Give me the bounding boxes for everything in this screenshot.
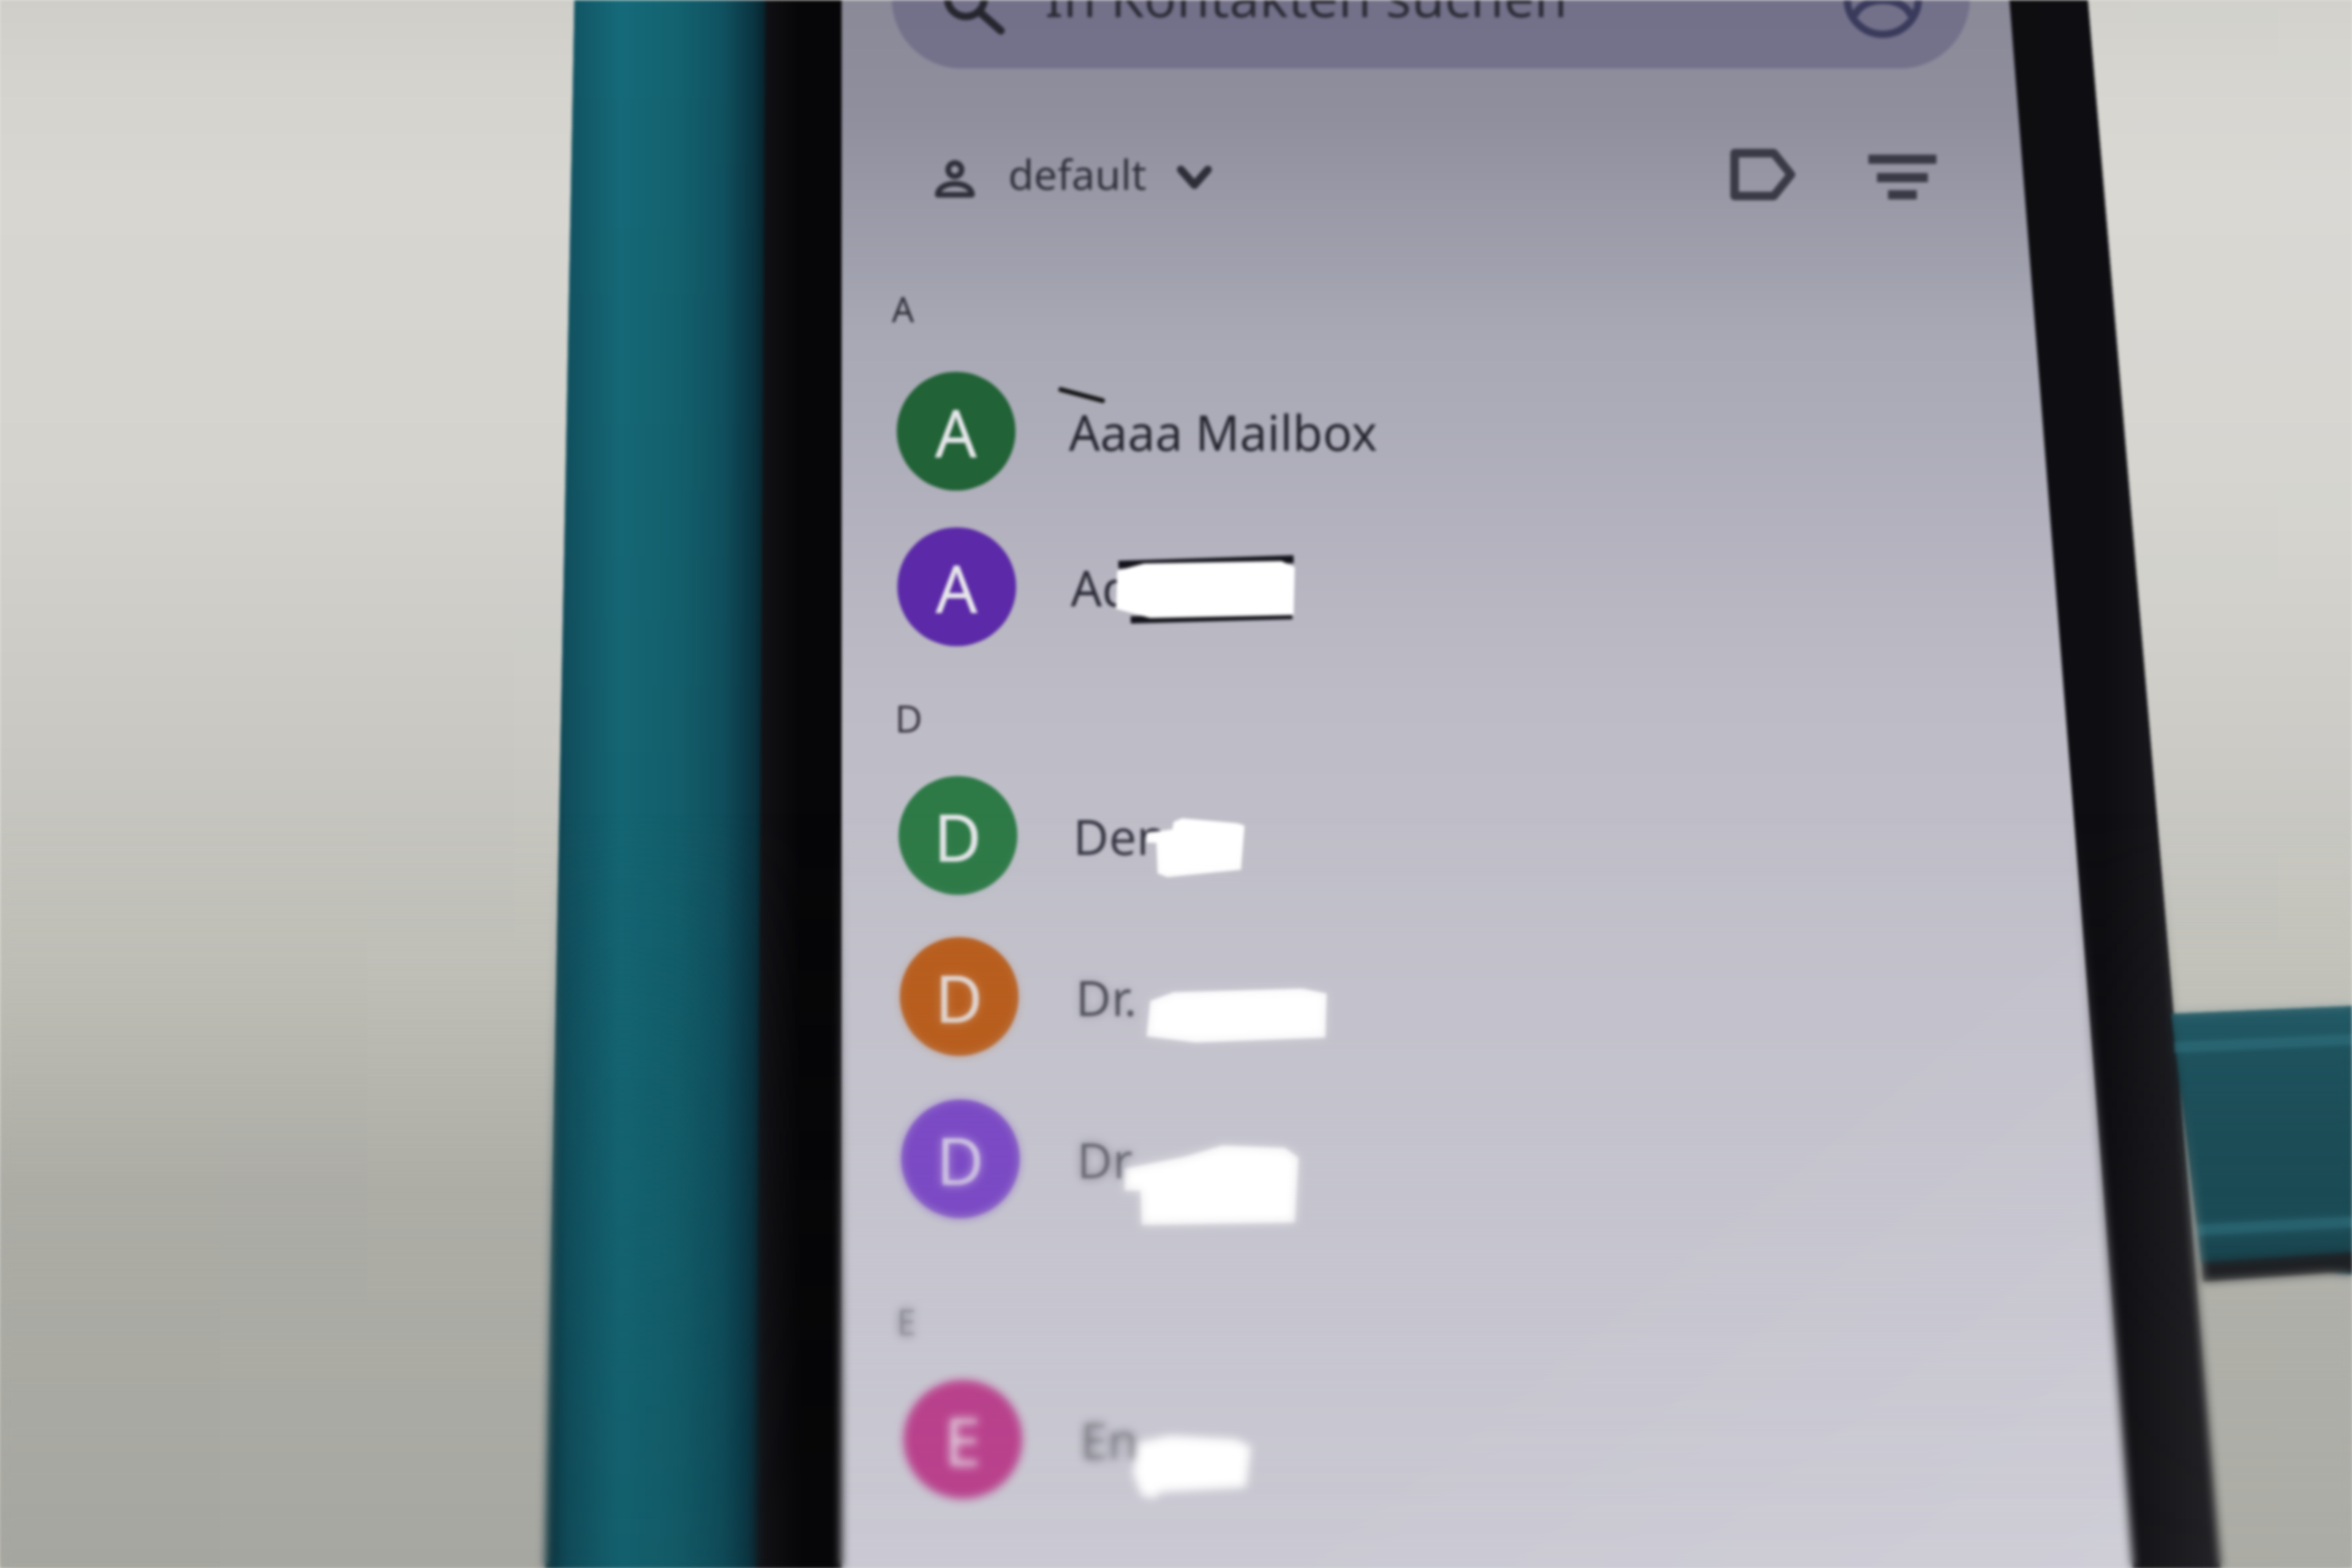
button[interactable]: Konto — [1841, 0, 1920, 67]
button[interactable] — [919, 130, 1237, 227]
button[interactable] — [842, 354, 2005, 510]
button[interactable] — [842, 1359, 2067, 1520]
button[interactable]: In Kontakten suchen — [892, 0, 1847, 69]
button[interactable] — [842, 916, 2042, 1078]
button[interactable]: Label — [1709, 123, 1819, 233]
button[interactable]: Filter — [1850, 123, 1960, 233]
button[interactable] — [842, 1078, 2048, 1240]
button[interactable] — [842, 756, 2036, 916]
button[interactable] — [842, 510, 2011, 665]
